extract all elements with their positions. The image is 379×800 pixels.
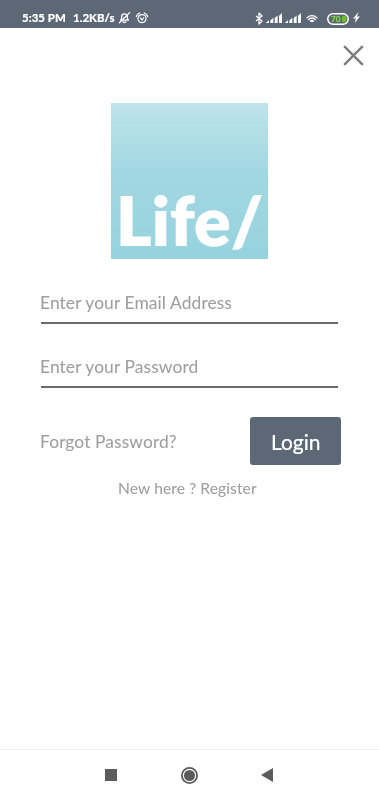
staticText: Enter your Email Address [40, 292, 233, 313]
staticText: Enter your Password [40, 356, 199, 377]
button[interactable]: Home [165, 751, 213, 799]
button[interactable]: Forgot Password? [40, 431, 177, 452]
staticText: Login [271, 429, 321, 454]
button[interactable]: Close [329, 31, 378, 80]
staticText: Life/ [116, 179, 264, 261]
staticText: 5:35 PM [22, 11, 66, 25]
button[interactable]: Login [250, 417, 341, 465]
staticText: New here ? Register [118, 479, 257, 498]
button[interactable]: Back [243, 751, 291, 799]
button[interactable]: Recents [87, 751, 135, 799]
staticText: 70 [331, 14, 341, 24]
button[interactable]: New here ? Register [118, 479, 257, 498]
staticText: Forgot Password? [40, 431, 177, 452]
staticText: 1.2KB/s [73, 11, 115, 25]
